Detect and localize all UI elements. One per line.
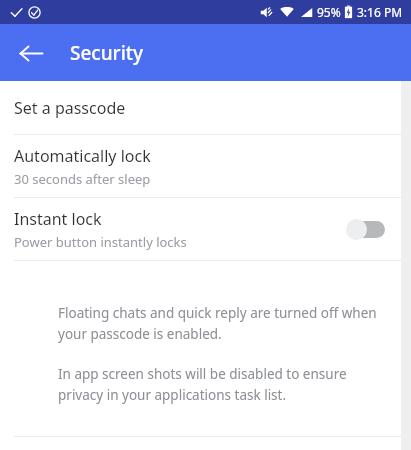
button[interactable]: Set a passcode xyxy=(0,81,411,134)
staticText: Instant lock xyxy=(14,208,102,230)
staticText: Power button instantly locks xyxy=(14,233,187,251)
button[interactable]: Back xyxy=(7,29,55,77)
staticText: Floating chats and quick reply are turne… xyxy=(58,304,377,343)
staticText: 3:16 PM xyxy=(357,4,403,20)
staticText: Security xyxy=(70,40,144,66)
staticText: Set a passcode xyxy=(14,97,126,119)
button[interactable]: Instant lock toggle xyxy=(346,218,384,240)
button[interactable]: Instant lock xyxy=(0,198,411,260)
staticText: In app screen shots will be disabled to … xyxy=(58,365,347,404)
button[interactable]: Automatically lock xyxy=(0,135,411,197)
staticText: Automatically lock xyxy=(14,145,151,167)
staticText: 30 seconds after sleep xyxy=(14,170,151,188)
staticText: 95% xyxy=(317,4,341,20)
